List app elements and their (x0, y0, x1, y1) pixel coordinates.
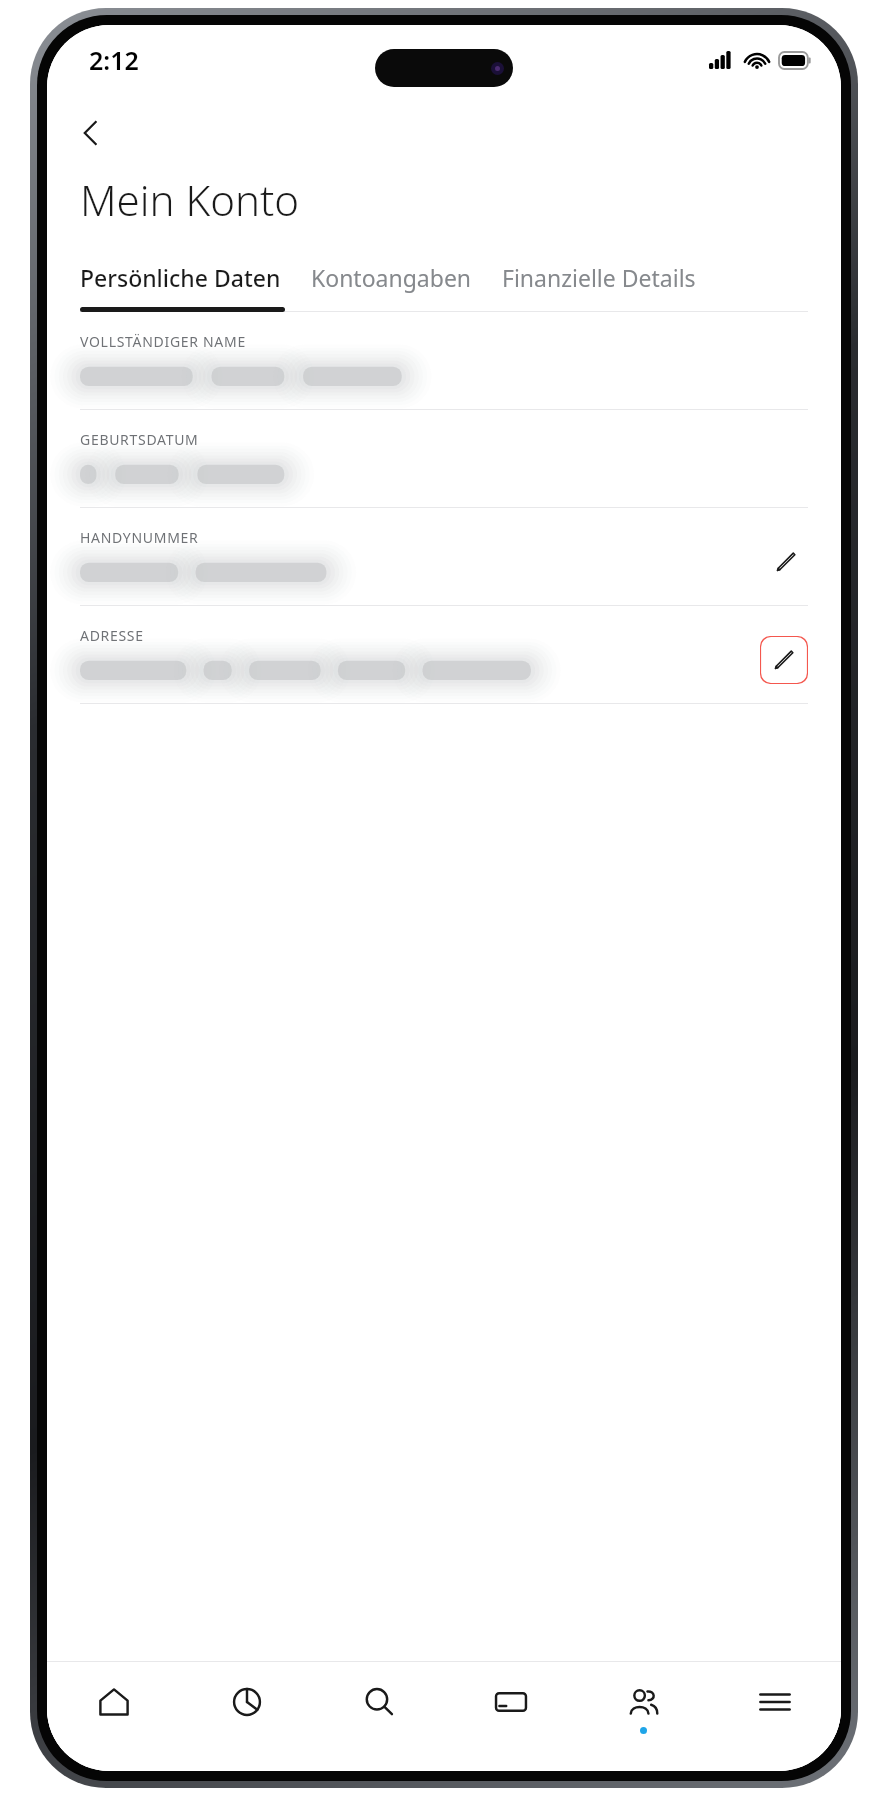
staticText: HANDYNUMMER (80, 528, 199, 547)
staticText: ADRESSE (80, 626, 144, 645)
button[interactable]: Finanzielle Details (502, 262, 696, 307)
staticText: Mein Konto (80, 171, 299, 228)
staticText: VOLLSTÄNDIGER NAME (80, 332, 246, 351)
staticText: 2:12 (89, 43, 139, 77)
button[interactable]: Bearbeiten (760, 636, 808, 684)
staticText: Finanzielle Details (502, 262, 696, 293)
button[interactable]: Suche (313, 1662, 445, 1757)
button[interactable]: Start (47, 1662, 180, 1757)
button[interactable]: Kontoangaben (311, 262, 502, 307)
button[interactable]: Menü (709, 1662, 841, 1757)
button[interactable]: Übersicht (180, 1662, 313, 1757)
staticText: Kontoangaben (311, 262, 472, 293)
staticText: Persönliche Daten (80, 262, 281, 293)
staticText: GEBURTSDATUM (80, 430, 199, 449)
button[interactable]: Persönliche Daten (80, 262, 311, 307)
button[interactable]: Konto (577, 1662, 709, 1757)
button[interactable]: Zurück (63, 105, 119, 161)
button[interactable]: Bearbeiten (764, 540, 808, 584)
button[interactable]: Karten (445, 1662, 577, 1757)
